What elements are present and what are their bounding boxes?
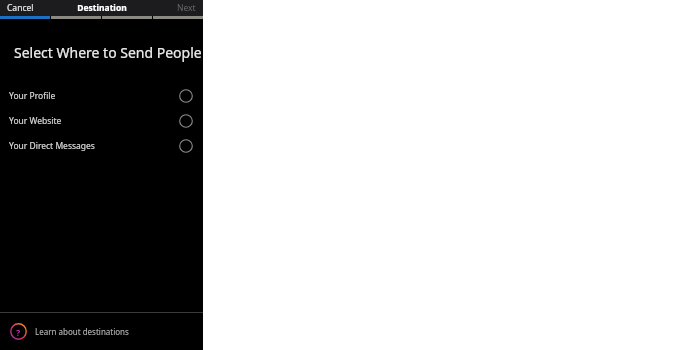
- staticText: Next: [177, 2, 196, 14]
- button[interactable]: Next: [170, 0, 203, 16]
- staticText: Cancel: [7, 2, 34, 14]
- staticText: Your Direct Messages: [9, 140, 95, 152]
- button[interactable]: Your Profile: [0, 83, 203, 108]
- staticText: Your Website: [9, 115, 62, 127]
- staticText: Your Profile: [9, 90, 56, 102]
- staticText: ?: [16, 326, 21, 338]
- staticText: Learn about destinations: [35, 326, 129, 337]
- staticText: Destination: [77, 2, 127, 14]
- button[interactable]: Your Direct Messages: [0, 133, 203, 158]
- button[interactable]: Cancel: [0, 0, 41, 16]
- button[interactable]: Your Website: [0, 108, 203, 133]
- staticText: Select Where to Send People: [14, 43, 202, 62]
- button[interactable]: ?: [0, 313, 203, 350]
